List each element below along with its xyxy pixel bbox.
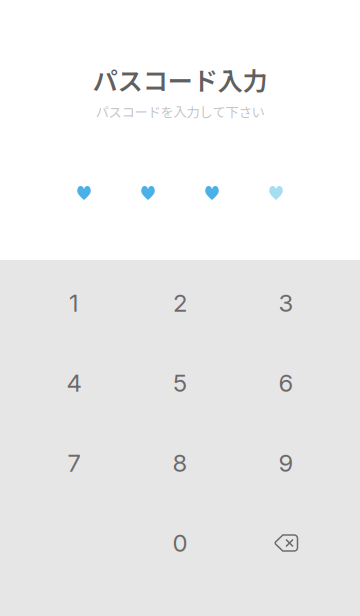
staticText: 0 <box>172 528 187 557</box>
button[interactable]: 6 <box>233 343 339 423</box>
button[interactable]: 3 <box>233 263 339 343</box>
button[interactable]: 8 <box>127 423 233 503</box>
button[interactable]: 5 <box>127 343 233 423</box>
staticText: 2 <box>173 288 187 317</box>
staticText: 7 <box>67 448 80 477</box>
staticText: 6 <box>278 368 293 397</box>
staticText: パスコード入力 <box>92 61 267 98</box>
staticText: 8 <box>172 448 187 477</box>
staticText: 9 <box>278 448 293 477</box>
button[interactable]: 2 <box>127 263 233 343</box>
button[interactable]: 9 <box>233 423 339 503</box>
button[interactable]: Delete <box>233 503 339 583</box>
button[interactable]: 0 <box>127 503 233 583</box>
button[interactable]: 4 <box>21 343 127 423</box>
staticText: 3 <box>278 288 293 317</box>
staticText: 1 <box>69 288 79 317</box>
button[interactable]: 1 <box>21 263 127 343</box>
staticText: 5 <box>173 368 187 397</box>
staticText: パスコードを入力して下さい <box>95 102 264 121</box>
staticText: 4 <box>66 368 81 397</box>
button[interactable]: 7 <box>21 423 127 503</box>
